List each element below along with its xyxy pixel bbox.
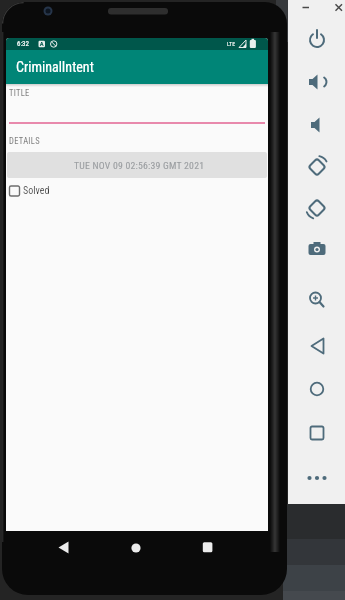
button[interactable] (303, 419, 331, 447)
button[interactable]: TUE NOV 09 02:56:39 GMT 2021 (7, 152, 267, 178)
staticText: CriminalIntent (16, 59, 94, 75)
button[interactable] (303, 153, 331, 181)
staticText: 6:32 (17, 40, 30, 48)
button[interactable] (303, 375, 331, 403)
button[interactable] (303, 194, 331, 222)
staticText: LTE (227, 40, 236, 47)
button[interactable] (303, 464, 331, 492)
staticText: DETAILS (9, 136, 40, 146)
staticText: TUE NOV 09 02:56:39 GMT 2021 (74, 160, 205, 171)
staticText: TITLE (9, 88, 30, 98)
button[interactable] (303, 286, 331, 314)
button[interactable]: Solved (8, 184, 78, 198)
button[interactable] (303, 332, 331, 360)
button[interactable] (9, 100, 265, 124)
button[interactable] (303, 235, 331, 263)
button[interactable] (303, 25, 331, 53)
button[interactable] (303, 111, 331, 139)
button[interactable] (303, 68, 331, 96)
staticText: Solved (23, 185, 50, 197)
